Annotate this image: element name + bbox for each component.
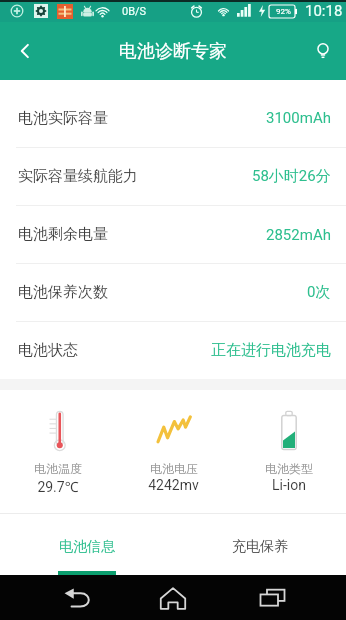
button[interactable]: 电池剩余电量 bbox=[0, 206, 346, 263]
staticText: 0B/S bbox=[122, 5, 147, 18]
button[interactable]: Back bbox=[48, 575, 106, 620]
staticText: 电池状态 bbox=[18, 341, 78, 360]
button[interactable]: 电池实际容量 bbox=[0, 80, 346, 147]
staticText: 电池剩余电量 bbox=[18, 225, 108, 244]
staticText: 2852mAh bbox=[266, 226, 331, 244]
button[interactable]: 电池电压 bbox=[116, 390, 231, 513]
staticText: 电池类型 bbox=[265, 461, 313, 476]
staticText: 正在进行电池充电 bbox=[211, 341, 331, 360]
staticText: Li-ion bbox=[272, 477, 306, 493]
button[interactable]: Back bbox=[0, 22, 50, 80]
staticText: 电池电压 bbox=[150, 461, 198, 476]
button[interactable]: 电池温度 bbox=[0, 390, 116, 513]
staticText: 电池诊断专家 bbox=[119, 40, 227, 63]
button[interactable]: Home bbox=[144, 575, 202, 620]
staticText: 3100mAh bbox=[266, 109, 331, 127]
staticText: 电池保养次数 bbox=[18, 283, 108, 302]
staticText: 充电保养 bbox=[232, 538, 288, 556]
staticText: 58小时26分 bbox=[252, 167, 331, 186]
button[interactable]: 实际容量续航能力 bbox=[0, 148, 346, 205]
staticText: 10:18 bbox=[305, 2, 343, 20]
button[interactable]: 电池类型 bbox=[231, 390, 346, 513]
staticText: 电池温度 bbox=[34, 461, 82, 476]
staticText: 电池实际容量 bbox=[18, 109, 108, 128]
button[interactable]: 电池信息 bbox=[0, 514, 173, 575]
staticText: 29.7℃ bbox=[37, 477, 79, 496]
staticText: 0次 bbox=[307, 283, 331, 302]
button[interactable]: 电池保养次数 bbox=[0, 264, 346, 321]
button[interactable]: Recents bbox=[244, 575, 300, 620]
staticText: 92% bbox=[276, 7, 291, 16]
button[interactable]: 充电保养 bbox=[173, 514, 346, 575]
staticText: 实际容量续航能力 bbox=[18, 167, 138, 186]
staticText: 4242mv bbox=[148, 477, 199, 493]
button[interactable]: Tips bbox=[300, 22, 346, 80]
staticText: 电池信息 bbox=[59, 538, 115, 556]
button[interactable]: 电池状态 bbox=[0, 322, 346, 379]
